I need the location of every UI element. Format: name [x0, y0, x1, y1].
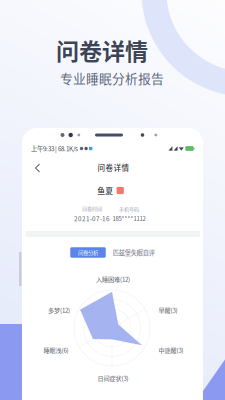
staticText: 问卷分析: [78, 248, 98, 256]
staticText: 睡眠浅(6): [43, 346, 68, 354]
staticText: 问卷详情: [56, 33, 148, 67]
button[interactable]: 匹兹堡失眠自评: [113, 247, 155, 258]
staticText: 鱼夏: [97, 185, 113, 196]
staticText: 日间症状(3): [97, 374, 128, 382]
staticText: 2021-07-16: [74, 214, 110, 223]
button[interactable]: 问卷分析: [70, 247, 106, 258]
staticText: 问卷时间: [82, 205, 102, 212]
staticText: 多梦(12): [48, 306, 70, 314]
staticText: 手机号码: [119, 205, 139, 213]
staticText: 早醒(3): [158, 306, 177, 314]
staticText: 上午9:33 | 68.1K/s: [31, 144, 78, 153]
staticText: 185****1112: [112, 214, 145, 223]
staticText: 专业睡眠分析报告: [60, 69, 164, 87]
staticText: 问卷详情: [97, 162, 129, 173]
staticText: 中途醒(3): [158, 346, 183, 354]
staticText: 匹兹堡失眠自评: [113, 248, 155, 257]
staticText: 入睡困难(12): [96, 275, 130, 283]
button[interactable]: Back: [27, 158, 48, 178]
